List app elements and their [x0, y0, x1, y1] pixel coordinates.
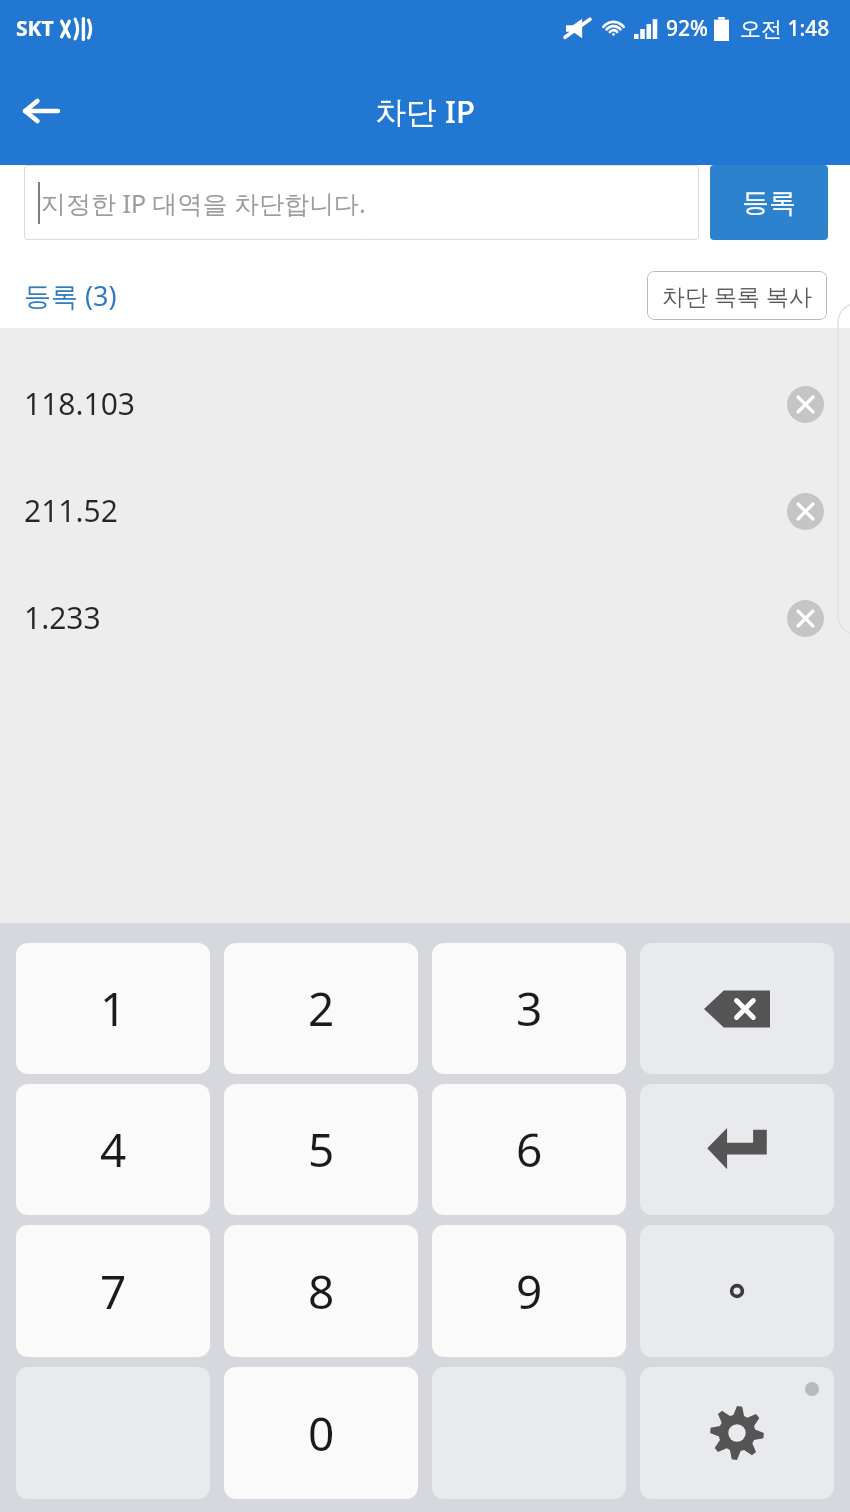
staticText: SKT — [16, 14, 54, 43]
button[interactable]: 차단 목록 복사 — [647, 271, 827, 320]
button[interactable]: Enter — [640, 1084, 834, 1215]
staticText: 8 — [308, 1260, 335, 1323]
button[interactable]: Dot — [640, 1225, 834, 1357]
staticText: 차단 IP — [375, 90, 475, 132]
staticText: 4 — [100, 1118, 127, 1181]
staticText: 6 — [516, 1118, 543, 1181]
staticText: 0 — [308, 1402, 335, 1465]
button[interactable]: 8 — [224, 1225, 418, 1357]
button[interactable]: Keyboard settings — [640, 1367, 834, 1499]
staticText: 92% — [666, 14, 708, 43]
button[interactable]: Delete 118.103 — [779, 378, 831, 430]
staticText: 2 — [308, 977, 335, 1040]
staticText: 5 — [308, 1118, 335, 1181]
button[interactable]: 3 — [432, 943, 626, 1074]
button[interactable]: 9 — [432, 1225, 626, 1357]
staticText: 3 — [516, 977, 543, 1040]
button[interactable]: 5 — [224, 1084, 418, 1215]
staticText: 9 — [516, 1260, 543, 1323]
button[interactable]: 0 — [224, 1367, 418, 1499]
button[interactable]: Delete 1.233 — [779, 592, 831, 644]
staticText: 등록 (3) — [24, 277, 117, 314]
button[interactable]: 지정한 IP 대역을 차단합니다. — [24, 165, 699, 240]
button[interactable]: 등록 — [710, 165, 828, 240]
button[interactable]: 118.103 — [0, 350, 850, 457]
button[interactable]: 1.233 — [0, 564, 850, 671]
staticText: 118.103 — [24, 383, 135, 424]
button[interactable]: 211.52 — [0, 457, 850, 564]
staticText: 등록 — [742, 186, 796, 220]
staticText: 7 — [100, 1260, 127, 1323]
button[interactable]: 1 — [16, 943, 210, 1074]
button[interactable]: Backspace — [640, 943, 834, 1074]
staticText: 차단 목록 복사 — [662, 280, 812, 311]
staticText: 오전 1:48 — [740, 14, 830, 43]
staticText: 1.233 — [24, 597, 101, 638]
staticText: 211.52 — [24, 490, 118, 531]
button[interactable]: 6 — [432, 1084, 626, 1215]
button[interactable]: Delete 211.52 — [779, 485, 831, 537]
staticText: 지정한 IP 대역을 차단합니다. — [41, 186, 366, 220]
button[interactable]: 2 — [224, 943, 418, 1074]
button[interactable]: Back — [6, 76, 76, 146]
button[interactable]: 7 — [16, 1225, 210, 1357]
staticText: 1 — [100, 977, 127, 1040]
button[interactable]: 4 — [16, 1084, 210, 1215]
